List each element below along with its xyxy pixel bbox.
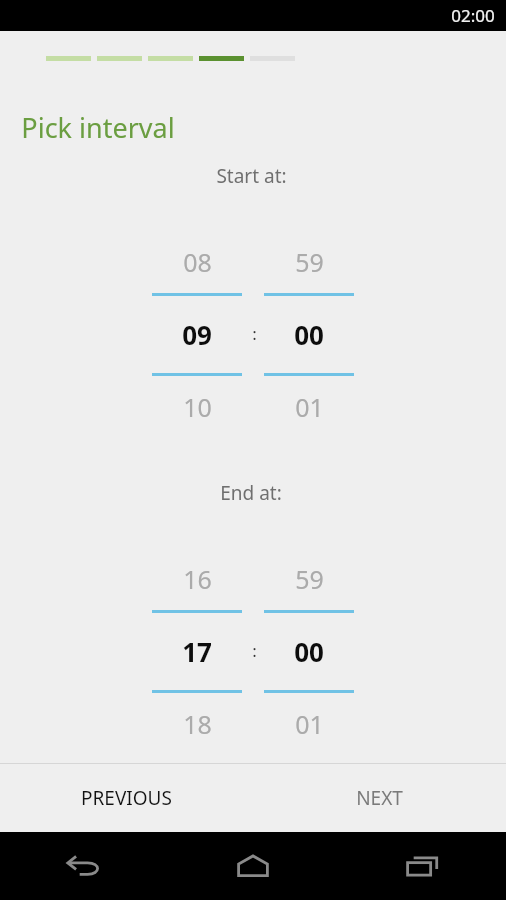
- staticText: Start at:: [216, 163, 287, 189]
- staticText: 09: [182, 317, 212, 352]
- button[interactable]: Recent apps: [337, 832, 506, 900]
- staticText: Pick interval: [21, 109, 175, 146]
- staticText: 59: [295, 245, 324, 279]
- staticText: 18: [183, 707, 212, 741]
- button[interactable]: Home: [168, 832, 337, 900]
- button[interactable]: 59: [264, 548, 354, 755]
- button[interactable]: PREVIOUS: [0, 764, 253, 832]
- staticText: 01: [295, 390, 324, 424]
- staticText: 02:00: [451, 4, 495, 27]
- staticText: 00: [294, 634, 324, 669]
- button[interactable]: 08: [152, 231, 242, 438]
- staticText: NEXT: [356, 785, 403, 811]
- staticText: PREVIOUS: [81, 785, 172, 811]
- staticText: 16: [183, 562, 212, 596]
- button[interactable]: Back: [0, 832, 168, 900]
- button[interactable]: 59: [264, 231, 354, 438]
- staticText: 59: [295, 562, 324, 596]
- button[interactable]: NEXT: [253, 764, 506, 832]
- staticText: End at:: [220, 480, 282, 506]
- staticText: 10: [183, 390, 212, 424]
- button[interactable]: 16: [152, 548, 242, 755]
- staticText: 00: [294, 317, 324, 352]
- staticText: 08: [183, 245, 212, 279]
- staticText: 01: [295, 707, 324, 741]
- staticText: :: [252, 322, 257, 345]
- staticText: :: [252, 639, 257, 662]
- staticText: 17: [182, 634, 212, 669]
